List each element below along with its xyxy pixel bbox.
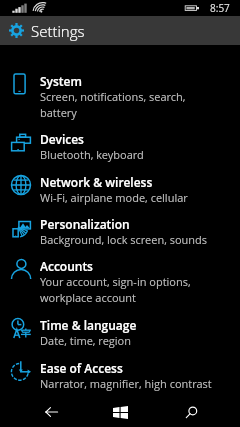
staticText: Narrator, magnifier, high contrast	[40, 376, 212, 391]
staticText: Settings	[31, 21, 85, 41]
staticText: System	[40, 73, 82, 89]
staticText: Screen, notifications, search, battery	[40, 89, 215, 120]
staticText: Devices	[40, 131, 84, 147]
staticText: Your account, sign-in options, workplace…	[40, 274, 215, 305]
button[interactable]: Personalization	[0, 216, 240, 247]
staticText: Ease of Access	[40, 360, 123, 376]
button[interactable]: Devices	[0, 131, 240, 162]
staticText: Accounts	[40, 258, 93, 274]
staticText: Personalization	[40, 216, 130, 232]
button[interactable]: Settings	[0, 16, 240, 45]
button[interactable]: Back	[38, 399, 64, 425]
staticText: 8:57	[210, 1, 230, 15]
button[interactable]: Network & wireless	[0, 174, 240, 205]
staticText: Network & wireless	[40, 174, 153, 190]
staticText: Background, lock screen, sounds	[40, 232, 208, 247]
button[interactable]: Ease of Access	[0, 360, 240, 391]
button[interactable]: System	[0, 73, 240, 120]
staticText: Wi-Fi, airplane mode, cellular	[40, 190, 188, 205]
button[interactable]: Search	[178, 399, 204, 425]
button[interactable]: Start	[107, 399, 133, 425]
staticText: Date, time, region	[40, 333, 132, 348]
button[interactable]: Accounts	[0, 258, 240, 305]
staticText: Time & language	[40, 317, 137, 333]
button[interactable]: Time & language	[0, 317, 240, 348]
staticText: Bluetooth, keyboard	[40, 147, 144, 162]
